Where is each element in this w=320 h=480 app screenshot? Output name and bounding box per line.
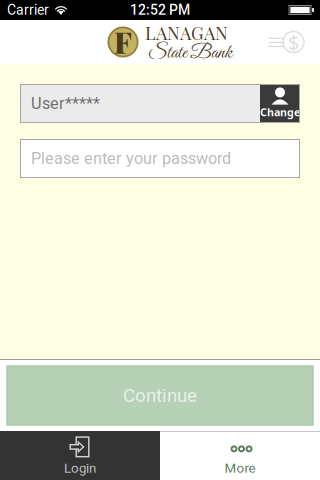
staticText: F (114, 22, 132, 61)
staticText: More (224, 460, 255, 476)
staticText: Login (64, 460, 96, 476)
staticText: Change (260, 105, 300, 119)
staticText: LANAGAN (145, 20, 228, 44)
staticText: Continue (123, 385, 197, 406)
staticText: User***** (31, 94, 100, 113)
staticText: Please enter your password (31, 149, 231, 168)
button[interactable]: More (160, 431, 320, 480)
button[interactable]: Transfers (268, 20, 320, 64)
staticText: $ (288, 29, 299, 55)
button[interactable]: Login (0, 431, 160, 480)
staticText: 12:52 PM (130, 2, 190, 18)
staticText: State Bank (148, 40, 232, 65)
button[interactable]: Change (260, 84, 300, 123)
button[interactable]: Continue (6, 365, 313, 425)
staticText: Carrier (7, 2, 49, 18)
